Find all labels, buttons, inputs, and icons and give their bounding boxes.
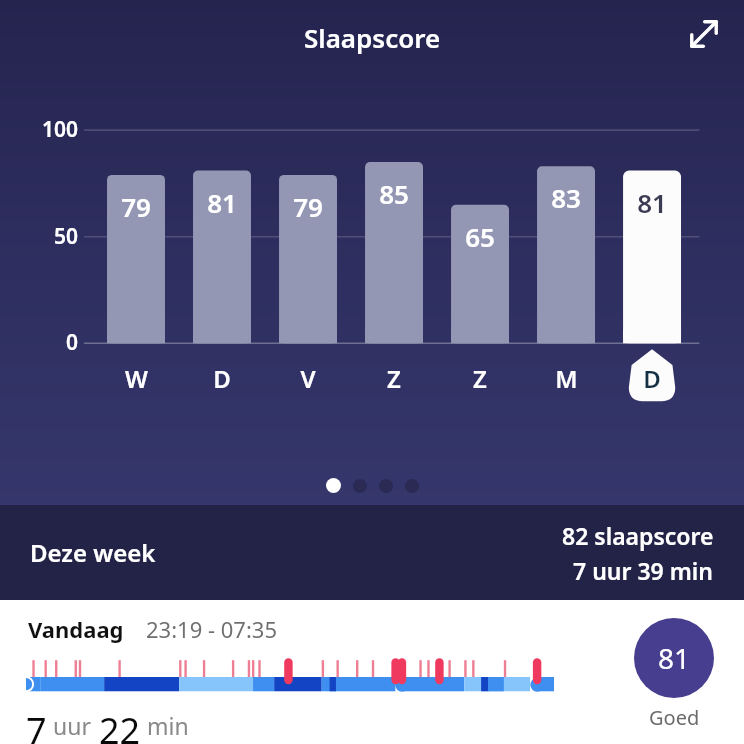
- staticText: 85: [365, 176, 423, 211]
- staticText: W: [125, 362, 148, 395]
- staticText: 83: [537, 180, 595, 215]
- staticText: 81: [658, 639, 691, 677]
- staticText: 23:19 - 07:35: [146, 614, 277, 644]
- staticText: Goed: [649, 704, 700, 731]
- staticText: M: [555, 362, 578, 395]
- button[interactable]: [405, 479, 419, 493]
- staticText: 50: [0, 222, 78, 251]
- staticText: Z: [473, 362, 487, 395]
- staticText: 100: [0, 115, 78, 144]
- button[interactable]: Z: [365, 357, 423, 399]
- staticText: 7: [26, 706, 47, 744]
- button[interactable]: Vandaag: [0, 600, 744, 744]
- button[interactable]: V: [279, 357, 337, 399]
- button[interactable]: [326, 478, 341, 493]
- button[interactable]: D: [623, 357, 681, 399]
- button[interactable]: Deze week: [0, 505, 744, 600]
- staticText: 7 uur 39 min: [573, 555, 714, 586]
- staticText: 82 slaapscore: [562, 520, 714, 551]
- button[interactable]: 81: [634, 618, 714, 731]
- staticText: Deze week: [30, 536, 156, 569]
- staticText: 22: [99, 706, 141, 744]
- button[interactable]: W: [107, 357, 165, 399]
- button[interactable]: Vergroten: [676, 6, 732, 62]
- staticText: V: [300, 362, 316, 395]
- staticText: uur: [53, 710, 91, 741]
- staticText: 81: [193, 185, 251, 220]
- staticText: D: [643, 362, 661, 395]
- staticText: min: [147, 710, 189, 741]
- staticText: D: [213, 362, 231, 395]
- button[interactable]: Z: [451, 357, 509, 399]
- button[interactable]: D: [193, 357, 251, 399]
- button[interactable]: Slaapscore: [296, 16, 449, 59]
- button[interactable]: [379, 479, 393, 493]
- staticText: 81: [623, 185, 681, 220]
- staticText: Z: [387, 362, 401, 395]
- button[interactable]: [353, 479, 367, 493]
- staticText: 65: [451, 219, 509, 254]
- staticText: Vandaag: [28, 614, 124, 644]
- staticText: 79: [279, 189, 337, 224]
- button[interactable]: M: [537, 357, 595, 399]
- staticText: 79: [107, 189, 165, 224]
- staticText: 0: [0, 328, 78, 357]
